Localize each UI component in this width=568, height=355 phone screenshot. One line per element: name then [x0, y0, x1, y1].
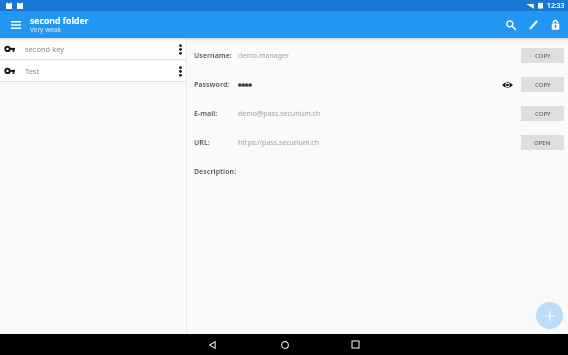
button[interactable]: Test — [0, 61, 186, 81]
staticText: demo@pass.securium.ch — [238, 109, 321, 119]
button[interactable]: Recents — [345, 334, 366, 355]
staticText: COPY — [535, 81, 551, 89]
staticText: Description: — [194, 167, 237, 177]
button[interactable]: Search — [500, 14, 522, 36]
staticText: second key — [25, 44, 65, 54]
staticText: OPEN — [534, 139, 551, 147]
button[interactable]: Add — [536, 302, 563, 329]
button[interactable]: Open navigation menu — [6, 15, 26, 35]
button[interactable]: Edit — [522, 14, 544, 36]
staticText: Test — [25, 66, 40, 76]
button[interactable]: More options — [170, 39, 190, 59]
staticText: Password: — [194, 80, 230, 90]
button[interactable]: Back — [202, 334, 223, 355]
staticText: E-mail: — [194, 109, 218, 119]
staticText: COPY — [535, 52, 551, 60]
staticText: 12:33 — [547, 1, 565, 10]
staticText: COPY — [535, 110, 551, 118]
button[interactable]: More options — [170, 61, 190, 81]
button[interactable]: Home — [274, 334, 295, 355]
staticText: demo.manager — [238, 51, 289, 61]
staticText: Very weak — [30, 25, 62, 34]
button[interactable]: COPY — [521, 48, 564, 63]
button[interactable]: Lock — [544, 14, 566, 36]
staticText: Username: — [194, 51, 232, 61]
button[interactable]: COPY — [521, 77, 564, 92]
staticText: URL: — [194, 138, 210, 148]
staticText: https://pass.securium.ch — [238, 138, 320, 148]
button[interactable]: second key — [0, 39, 186, 59]
button[interactable]: COPY — [521, 106, 564, 121]
button[interactable]: Show password — [500, 78, 514, 92]
staticText: second folder — [30, 15, 89, 27]
button[interactable]: OPEN — [521, 135, 564, 150]
